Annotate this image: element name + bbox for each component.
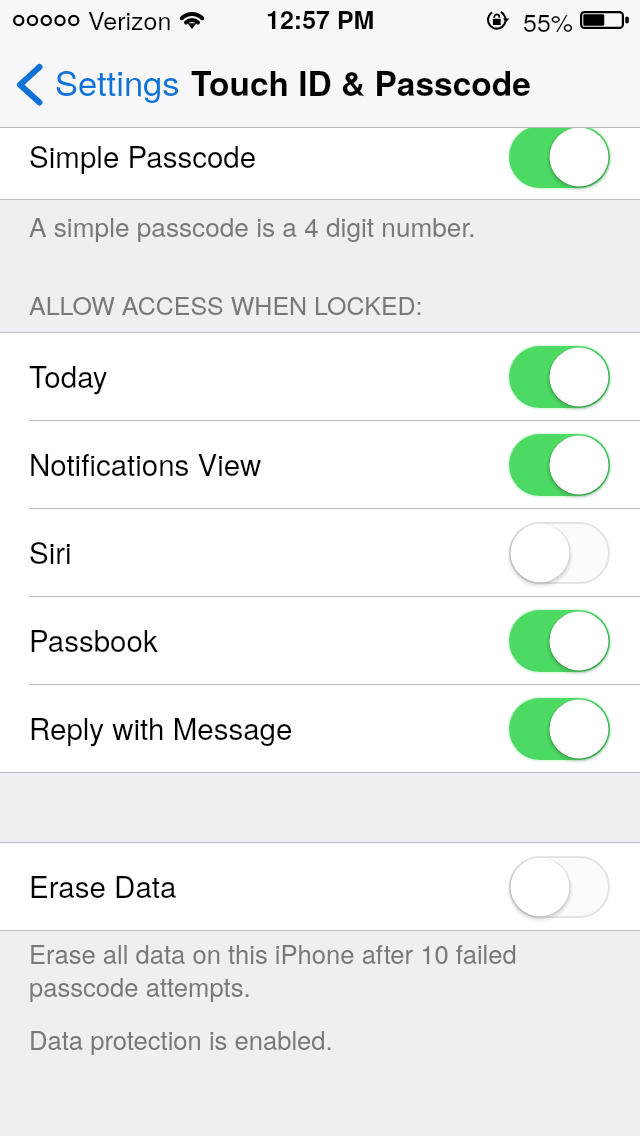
staticText: Passbook [29, 618, 158, 660]
button[interactable]: Today [0, 333, 640, 420]
button[interactable]: Erase Data [0, 843, 640, 930]
staticText: Siri [29, 530, 72, 572]
button[interactable]: On [509, 698, 610, 760]
staticText: Erase Data [29, 864, 177, 906]
staticText: ALLOW ACCESS WHEN LOCKED: [29, 286, 423, 322]
staticText: Verizon [88, 1, 172, 37]
button[interactable]: On [509, 610, 610, 672]
staticText: Reply with Message [29, 706, 293, 748]
staticText: 55% [523, 3, 574, 39]
button[interactable]: Off [509, 522, 610, 584]
button[interactable]: On [509, 434, 610, 496]
button[interactable]: Back to Settings [0, 48, 180, 128]
button[interactable]: Off [509, 856, 610, 918]
button[interactable]: On [509, 346, 610, 408]
button[interactable]: Reply with Message [0, 685, 640, 772]
staticText: Settings [55, 56, 180, 106]
staticText: Notifications View [29, 442, 262, 484]
button[interactable]: Simple Passcode [0, 128, 640, 192]
button[interactable]: Siri [0, 509, 640, 596]
staticText: A simple passcode is a 4 digit number. [29, 207, 476, 245]
button[interactable]: Passbook [0, 597, 640, 684]
staticText: Simple Passcode [29, 134, 257, 176]
staticText: 12:57 PM [266, 1, 375, 37]
staticText: Today [29, 354, 108, 396]
staticText: Data protection is enabled. [29, 1021, 333, 1058]
staticText: Touch ID & Passcode [191, 58, 531, 106]
button[interactable]: On [509, 128, 610, 188]
button[interactable]: Notifications View [0, 421, 640, 508]
staticText: Erase all data on this iPhone after 10 f… [29, 935, 517, 1005]
